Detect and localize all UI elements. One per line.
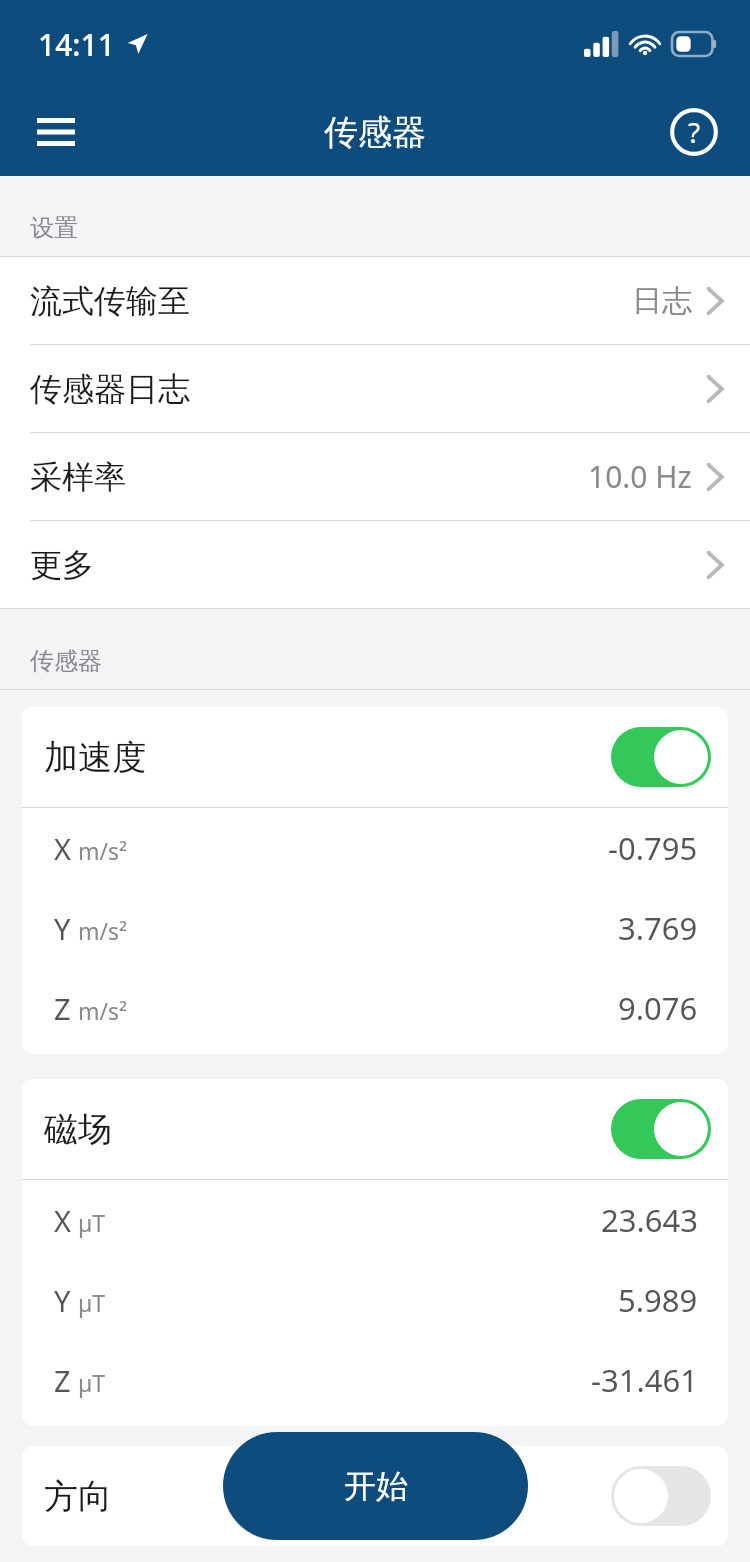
staticText: 5.989 (618, 1279, 698, 1321)
staticText: 流式传输至 (30, 281, 190, 321)
staticText: 磁场 (44, 1108, 112, 1151)
button[interactable]: Toggle off (611, 1466, 711, 1526)
staticText: 传感器日志 (30, 369, 190, 409)
staticText: 传感器 (30, 646, 102, 676)
staticText: 采样率 (30, 457, 126, 497)
staticText: 23.643 (601, 1199, 698, 1241)
staticText: 日志 (632, 282, 692, 320)
staticText: µT (78, 1207, 106, 1238)
staticText: -31.461 (591, 1359, 698, 1401)
button[interactable]: Toggle on (611, 1099, 711, 1159)
staticText: 加速度 (44, 736, 146, 779)
staticText: µT (78, 1287, 106, 1318)
staticText: m/s² (78, 915, 128, 946)
button[interactable]: Menu (20, 96, 92, 168)
button[interactable]: Help (660, 98, 728, 166)
staticText: 方向 (44, 1475, 112, 1518)
staticText: 设置 (30, 213, 78, 243)
button[interactable]: Toggle on (611, 727, 711, 787)
button[interactable]: 磁场 (22, 1079, 728, 1179)
staticText: µT (78, 1367, 106, 1398)
button[interactable]: 更多 (0, 521, 750, 608)
staticText: Y (54, 909, 71, 948)
staticText: 更多 (30, 545, 94, 585)
button[interactable]: 方向 (22, 1446, 728, 1546)
button[interactable]: 流式传输至 (0, 257, 750, 344)
staticText: Y (54, 1281, 71, 1320)
staticText: Z (54, 1361, 71, 1400)
staticText: ? (688, 113, 701, 151)
staticText: X (54, 829, 71, 868)
button[interactable]: 传感器日志 (0, 345, 750, 432)
staticText: 10.0 Hz (588, 456, 692, 497)
staticText: 14:11 (38, 24, 115, 65)
button[interactable]: 开始 (223, 1432, 528, 1540)
button[interactable]: 采样率 (0, 433, 750, 520)
staticText: X (54, 1201, 71, 1240)
staticText: m/s² (78, 835, 128, 866)
staticText: 3.769 (618, 907, 698, 949)
button[interactable]: 加速度 (22, 707, 728, 807)
staticText: 9.076 (618, 987, 698, 1029)
staticText: Z (54, 989, 71, 1028)
staticText: 传感器 (324, 111, 426, 154)
staticText: 开始 (344, 1466, 408, 1506)
staticText: m/s² (78, 995, 128, 1026)
staticText: -0.795 (608, 827, 698, 869)
